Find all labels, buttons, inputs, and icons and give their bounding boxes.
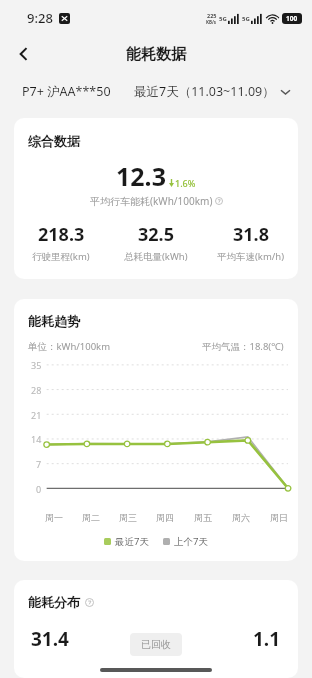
staticText: 31.4 bbox=[31, 626, 69, 652]
staticText: 35 bbox=[31, 359, 42, 371]
staticText: 能耗数据 bbox=[126, 45, 186, 64]
staticText: 上个7天 bbox=[174, 535, 208, 548]
button[interactable]: P7+ 沪AA***50 bbox=[22, 83, 111, 100]
staticText: 31.8 bbox=[233, 222, 269, 247]
staticText: 最近7天（11.03~11.09） bbox=[134, 83, 275, 100]
staticText: 21 bbox=[31, 409, 42, 421]
staticText: 32.5 bbox=[138, 222, 174, 247]
button[interactable]: 综合数据 bbox=[14, 118, 298, 279]
staticText: 225 bbox=[207, 12, 217, 19]
staticText: 平均行车能耗(kWh/100km) bbox=[90, 194, 213, 208]
staticText: 综合数据 bbox=[28, 133, 80, 149]
staticText: 1.1 bbox=[253, 626, 281, 652]
staticText: P7+ 沪AA***50 bbox=[22, 83, 111, 100]
staticText: 100 bbox=[286, 14, 298, 23]
staticText: 周日 bbox=[270, 512, 288, 523]
staticText: 周三 bbox=[119, 512, 137, 523]
staticText: 单位：kWh/100km bbox=[28, 340, 111, 353]
staticText: 12.3 bbox=[116, 159, 166, 193]
staticText: 周一 bbox=[45, 512, 63, 523]
staticText: 平均车速(km/h) bbox=[217, 250, 285, 263]
staticText: 218.3 bbox=[38, 222, 85, 247]
staticText: KB/s bbox=[206, 19, 217, 25]
staticText: 行驶里程(km) bbox=[32, 250, 90, 263]
staticText: 14 bbox=[31, 433, 42, 445]
staticText: 平均气温：18.8(℃) bbox=[202, 340, 284, 353]
staticText: 0 bbox=[36, 483, 42, 495]
staticText: 总耗电量(kWh) bbox=[124, 250, 188, 263]
staticText: 周四 bbox=[156, 512, 174, 523]
staticText: 已回收 bbox=[141, 638, 171, 651]
staticText: 28 bbox=[31, 384, 42, 396]
staticText: 最近7天 bbox=[115, 535, 149, 548]
staticText: 能耗趋势 bbox=[28, 313, 80, 329]
button[interactable]: Back bbox=[8, 38, 40, 70]
staticText: 能耗分布 bbox=[28, 594, 80, 610]
button[interactable]: 能耗趋势 bbox=[14, 299, 298, 561]
staticText: 7 bbox=[36, 458, 42, 470]
staticText: 5G bbox=[242, 15, 250, 23]
staticText: 周二 bbox=[82, 512, 100, 523]
button[interactable]: 能耗分布 bbox=[14, 580, 298, 678]
staticText: 5G bbox=[219, 15, 227, 23]
staticText: 1.6% bbox=[175, 177, 196, 189]
staticText: 周五 bbox=[194, 512, 212, 523]
staticText: 周六 bbox=[232, 512, 250, 523]
button[interactable]: 最近7天（11.03~11.09） bbox=[134, 83, 290, 100]
staticText: 9:28 bbox=[27, 9, 53, 27]
